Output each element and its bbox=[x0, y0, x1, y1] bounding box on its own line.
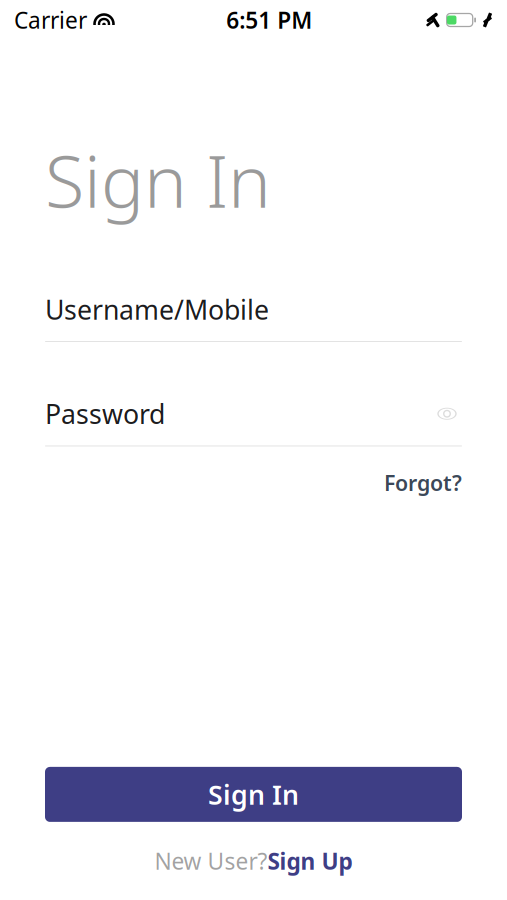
staticText: Sign In bbox=[45, 132, 271, 228]
staticText: 6:51 PM bbox=[226, 5, 312, 35]
staticText: New User? bbox=[154, 846, 267, 876]
staticText: Carrier bbox=[14, 5, 87, 35]
staticText: Sign In bbox=[208, 777, 299, 812]
button[interactable]: New User? bbox=[154, 846, 352, 876]
button[interactable]: Sign In bbox=[45, 767, 462, 822]
staticText: Username/Mobile bbox=[45, 292, 269, 327]
staticText: Forgot? bbox=[384, 468, 462, 497]
staticText: Password bbox=[45, 396, 165, 431]
button[interactable]: Show password bbox=[432, 402, 462, 426]
button[interactable]: Forgot? bbox=[384, 468, 462, 497]
staticText: Sign Up bbox=[267, 846, 352, 876]
